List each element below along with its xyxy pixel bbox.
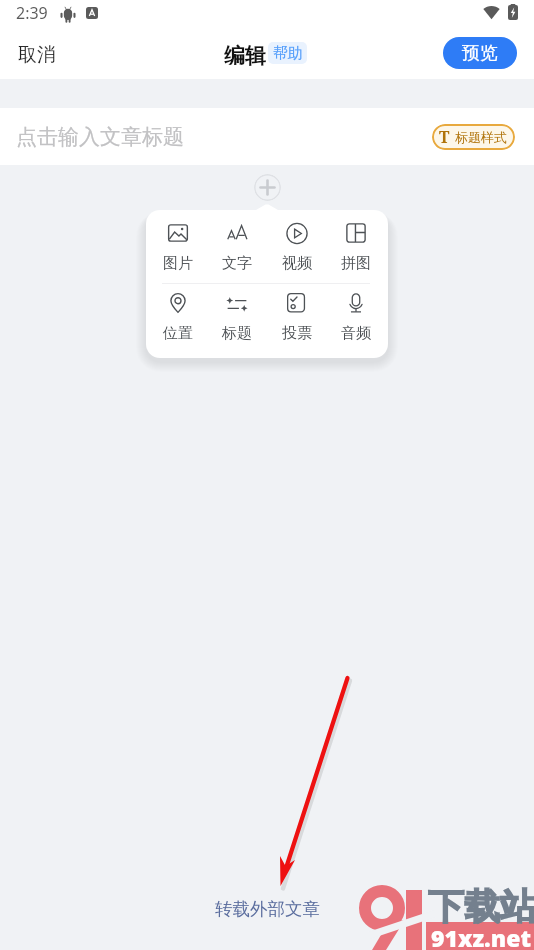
staticText: 预览 bbox=[462, 42, 498, 65]
staticText: 取消 bbox=[18, 43, 56, 67]
staticText: T bbox=[439, 126, 450, 148]
button[interactable]: 添加 bbox=[254, 174, 281, 201]
button[interactable]: 视频 bbox=[269, 221, 325, 273]
staticText: 帮助 bbox=[273, 44, 303, 63]
button[interactable]: 文字 bbox=[209, 221, 265, 273]
button[interactable]: 图片 bbox=[150, 221, 206, 273]
staticText: 标题样式 bbox=[455, 129, 507, 145]
staticText: 位置 bbox=[163, 324, 193, 343]
button[interactable]: T bbox=[432, 124, 515, 150]
button[interactable]: 帮助 bbox=[268, 42, 307, 64]
button[interactable]: 投票 bbox=[269, 291, 325, 343]
staticText: 转载外部文章 bbox=[215, 898, 320, 920]
button[interactable]: 音频 bbox=[328, 291, 384, 343]
button[interactable]: 标题 bbox=[209, 291, 265, 343]
staticText: 标题 bbox=[222, 324, 252, 343]
staticText: 投票 bbox=[282, 324, 312, 343]
staticText: 下载站 bbox=[428, 884, 534, 929]
staticText: 2:39 bbox=[16, 2, 48, 24]
staticText: 拼图 bbox=[341, 254, 371, 273]
button[interactable]: 拼图 bbox=[328, 221, 384, 273]
button[interactable]: 预览 bbox=[443, 37, 517, 69]
button[interactable]: 取消 bbox=[0, 35, 74, 75]
staticText: 视频 bbox=[282, 254, 312, 273]
staticText: 图片 bbox=[163, 254, 193, 273]
staticText: 音频 bbox=[341, 324, 371, 343]
staticText: 91xz.net bbox=[431, 922, 531, 950]
button[interactable]: 转载外部文章 bbox=[207, 894, 328, 924]
staticText: 文字 bbox=[222, 254, 252, 273]
button[interactable]: 位置 bbox=[150, 291, 206, 343]
staticText: 编辑 bbox=[224, 43, 266, 69]
staticText: 点击输入文章标题 bbox=[16, 124, 184, 150]
